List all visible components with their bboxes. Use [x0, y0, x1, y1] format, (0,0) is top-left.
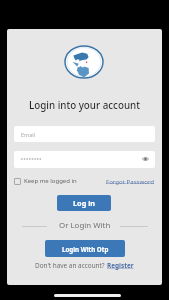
button[interactable]: Register — [107, 261, 134, 270]
staticText: Don't have an account? — [35, 261, 107, 270]
staticText: Login With Otp — [62, 245, 109, 253]
staticText: Login into your account — [29, 99, 140, 112]
staticText: Log in — [73, 198, 96, 208]
staticText: Or Login With — [59, 220, 111, 231]
staticText: Email — [21, 131, 36, 138]
button[interactable]: Log in — [57, 195, 111, 211]
staticText: Keep me logged in — [24, 177, 77, 185]
button[interactable]: Show password — [139, 152, 152, 165]
button[interactable]: Login With Otp — [45, 240, 125, 257]
button[interactable]: Show password — [14, 151, 155, 168]
button[interactable]: Email — [14, 126, 155, 142]
button[interactable]: Forgot Password — [106, 177, 155, 185]
button[interactable]: Keep me logged in — [14, 177, 77, 185]
